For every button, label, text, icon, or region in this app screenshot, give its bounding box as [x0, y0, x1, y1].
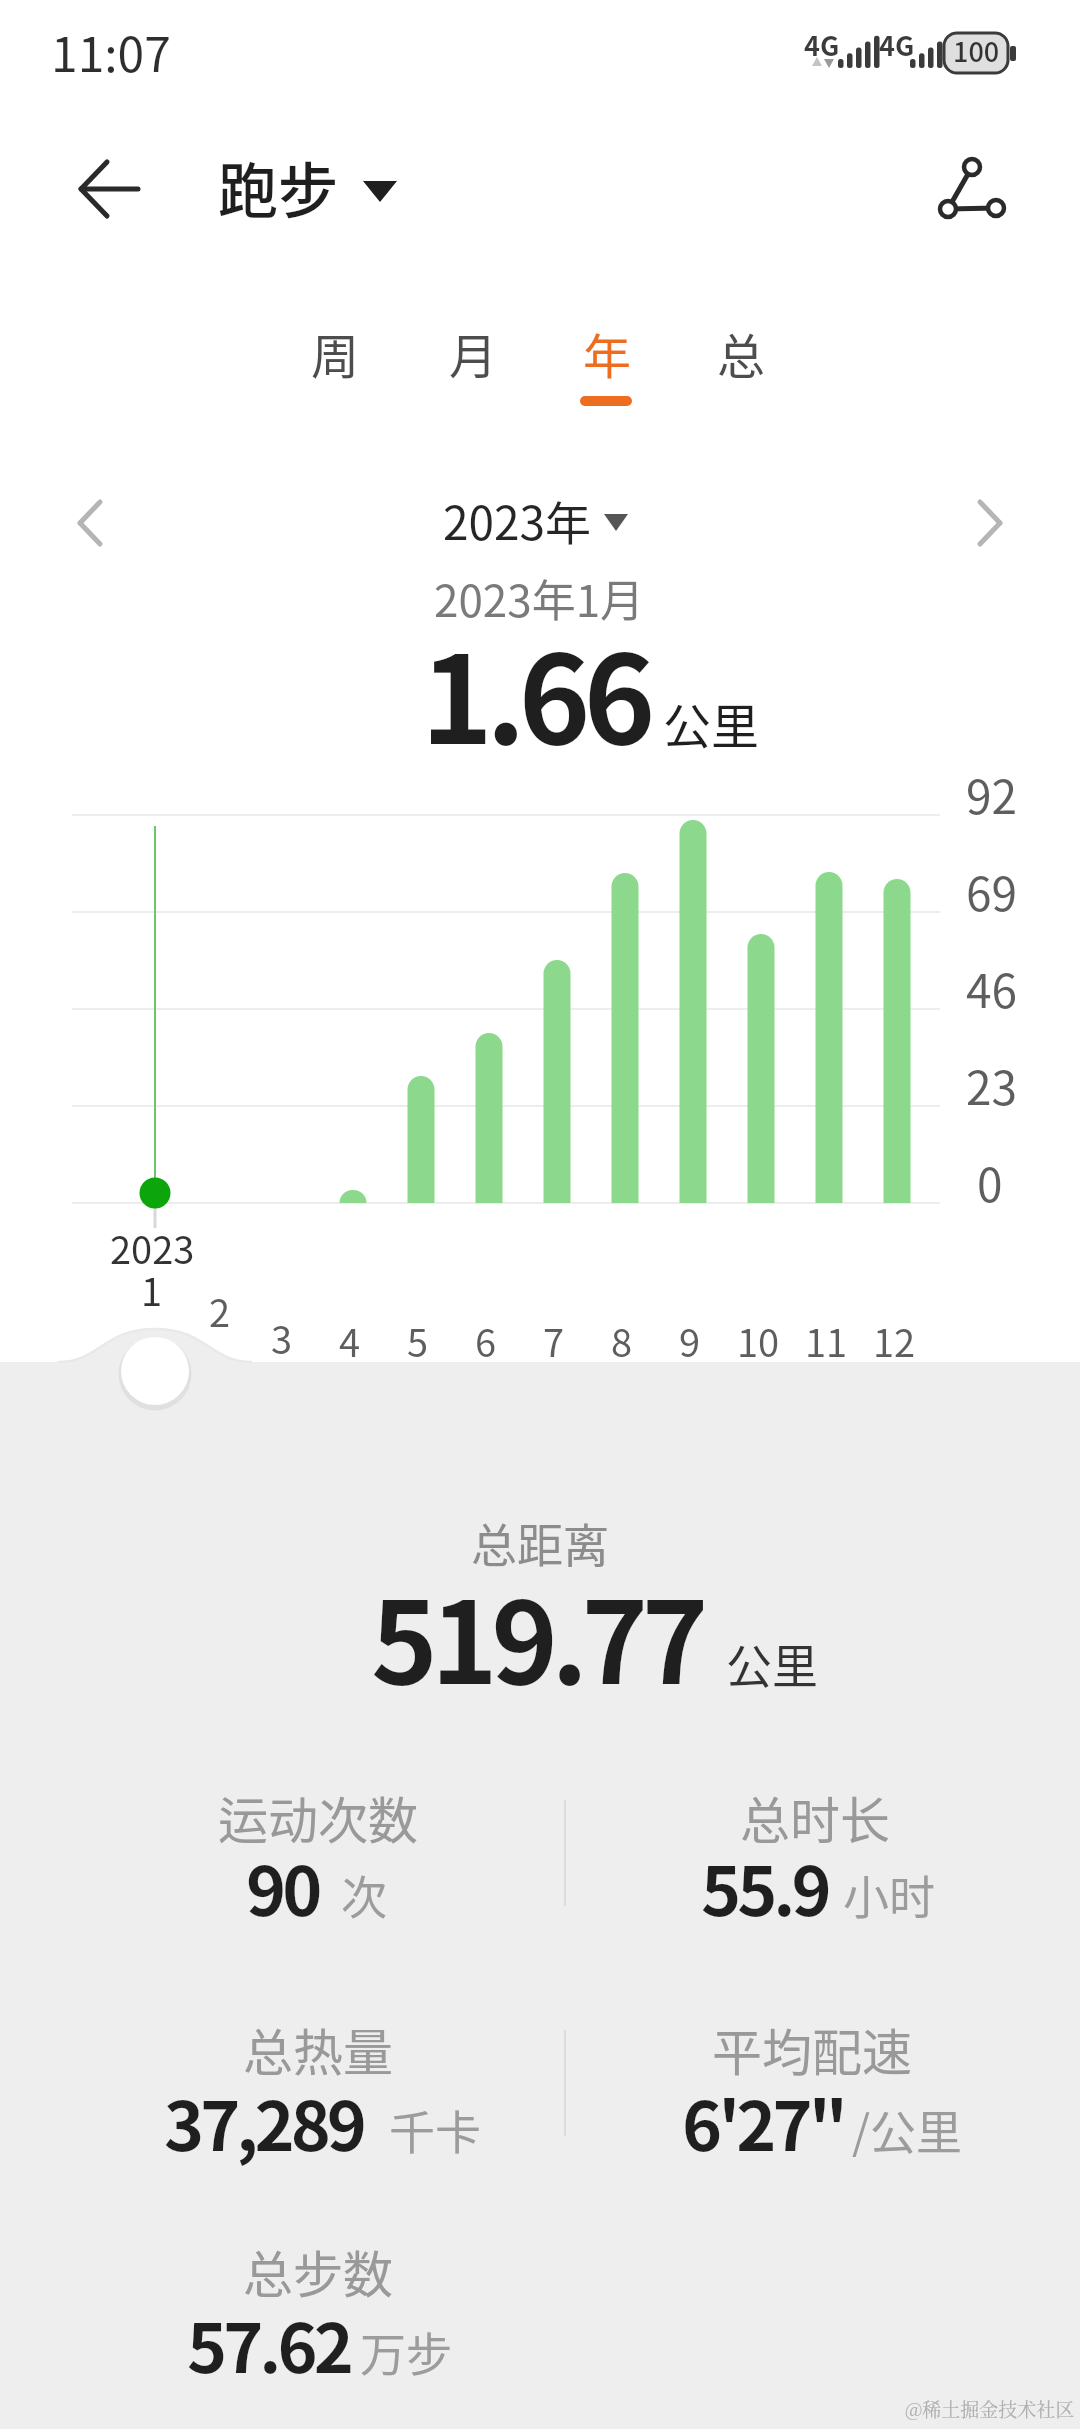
- staticText: 周: [311, 318, 360, 388]
- staticText: 3: [271, 1310, 293, 1365]
- staticText: 0: [977, 1149, 1003, 1216]
- staticText: 跑步: [218, 143, 338, 230]
- button[interactable]: 年: [542, 298, 672, 408]
- staticText: 12: [873, 1313, 916, 1368]
- staticText: 1.66: [421, 602, 649, 779]
- staticText: 6: [475, 1313, 497, 1368]
- staticText: 公里: [726, 1630, 818, 1697]
- staticText: 1: [141, 1262, 163, 1317]
- staticText: 8: [611, 1313, 633, 1368]
- staticText: 4G: [804, 25, 840, 64]
- staticText: @稀土掘金技术社区: [905, 2395, 1075, 2422]
- button[interactable]: [950, 480, 1040, 570]
- button[interactable]: [50, 480, 140, 570]
- staticText: 37,289: [164, 2072, 364, 2170]
- staticText: 千卡: [389, 2096, 481, 2163]
- staticText: 11:07: [51, 16, 171, 86]
- staticText: 10: [737, 1313, 780, 1368]
- staticText: 57.62: [187, 2294, 350, 2392]
- staticText: 月: [449, 318, 498, 388]
- staticText: 519.77: [371, 1553, 702, 1717]
- staticText: 2023年1月: [434, 566, 645, 630]
- staticText: 55.9: [701, 1837, 828, 1935]
- staticText: 100: [953, 31, 1000, 70]
- button[interactable]: 总: [676, 298, 806, 408]
- staticText: 2023年: [443, 487, 592, 554]
- staticText: 总时长: [740, 1781, 890, 1853]
- button[interactable]: 2023年: [387, 475, 647, 565]
- staticText: 69: [966, 858, 1018, 925]
- staticText: 23: [966, 1052, 1018, 1119]
- staticText: 万步: [360, 2318, 452, 2385]
- staticText: 年: [583, 318, 632, 388]
- staticText: 总距离: [471, 1509, 609, 1576]
- staticText: 11: [805, 1313, 848, 1368]
- staticText: 46: [966, 955, 1018, 1022]
- staticText: 92: [966, 761, 1018, 828]
- staticText: 2: [209, 1283, 231, 1338]
- staticText: 5: [407, 1313, 429, 1368]
- staticText: /公里: [852, 2096, 963, 2163]
- button[interactable]: 月: [408, 298, 538, 408]
- staticText: 平均配速: [712, 2013, 912, 2085]
- staticText: 总: [717, 318, 766, 388]
- staticText: 总热量: [243, 2013, 393, 2085]
- staticText: 次: [341, 1861, 387, 1928]
- staticText: 6'27": [682, 2072, 844, 2170]
- button[interactable]: 周: [270, 298, 400, 408]
- staticText: 2023: [110, 1220, 195, 1275]
- staticText: 4G: [879, 25, 915, 64]
- staticText: 4: [339, 1313, 361, 1368]
- button[interactable]: [915, 140, 1035, 240]
- staticText: 90: [246, 1837, 319, 1935]
- staticText: 小时: [843, 1861, 935, 1928]
- staticText: 总步数: [243, 2235, 393, 2307]
- button[interactable]: [205, 140, 405, 240]
- staticText: 运动次数: [218, 1781, 418, 1853]
- staticText: 9: [679, 1313, 701, 1368]
- button[interactable]: [55, 145, 160, 235]
- staticText: 公里: [663, 688, 760, 758]
- staticText: 7: [543, 1313, 565, 1368]
- button[interactable]: [115, 1331, 195, 1411]
